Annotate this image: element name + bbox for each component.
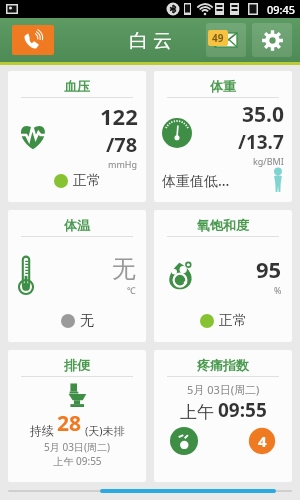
button[interactable]: 疼痛指数 xyxy=(154,350,292,482)
staticText: 正常 xyxy=(219,312,247,330)
staticText: 上午 09:55 xyxy=(53,454,102,468)
staticText: 疼痛指数 xyxy=(197,357,249,373)
staticText: 4 xyxy=(258,431,267,451)
staticText: 持续 xyxy=(30,423,54,438)
staticText: /13.7 xyxy=(238,129,284,155)
staticText: 体重值低... xyxy=(162,171,230,190)
staticText: 体重 xyxy=(210,78,236,94)
staticText: 血压 xyxy=(64,78,90,94)
staticText: 上午 xyxy=(180,402,214,423)
button[interactable]: Settings xyxy=(252,23,292,57)
staticText: (天)未排 xyxy=(85,423,125,438)
button[interactable]: 体温 xyxy=(8,210,146,342)
staticText: 95 xyxy=(256,254,282,284)
staticText: 体温 xyxy=(64,217,90,233)
staticText: 5月 03日(周二) xyxy=(187,382,260,397)
staticText: 09:45 xyxy=(267,2,296,17)
staticText: 28 xyxy=(57,409,82,438)
staticText: mmHg xyxy=(108,158,138,170)
staticText: /78 xyxy=(106,131,138,158)
button[interactable]: Call xyxy=(12,25,54,55)
button[interactable]: 体重 xyxy=(154,71,292,202)
staticText: 氧饱和度 xyxy=(197,217,249,233)
staticText: 无 xyxy=(112,254,136,284)
staticText: 正常 xyxy=(73,172,101,190)
button[interactable]: 血压 xyxy=(8,71,146,202)
button[interactable]: 氧饱和度 xyxy=(154,210,292,342)
staticText: 09:55 xyxy=(218,397,267,423)
staticText: ℃ xyxy=(127,284,136,296)
staticText: 排便 xyxy=(64,357,90,373)
staticText: 49 xyxy=(212,31,224,45)
staticText: % xyxy=(274,284,282,296)
staticText: 122 xyxy=(100,101,138,131)
staticText: 35.0 xyxy=(242,100,284,129)
button[interactable]: 排便 xyxy=(8,350,146,482)
staticText: 无 xyxy=(80,312,94,330)
staticText: 5月 03日(周二) xyxy=(44,440,110,454)
staticText: kg/BMI xyxy=(253,155,284,167)
button[interactable]: Messages xyxy=(206,23,246,57)
staticText: 白 云 xyxy=(129,27,172,53)
